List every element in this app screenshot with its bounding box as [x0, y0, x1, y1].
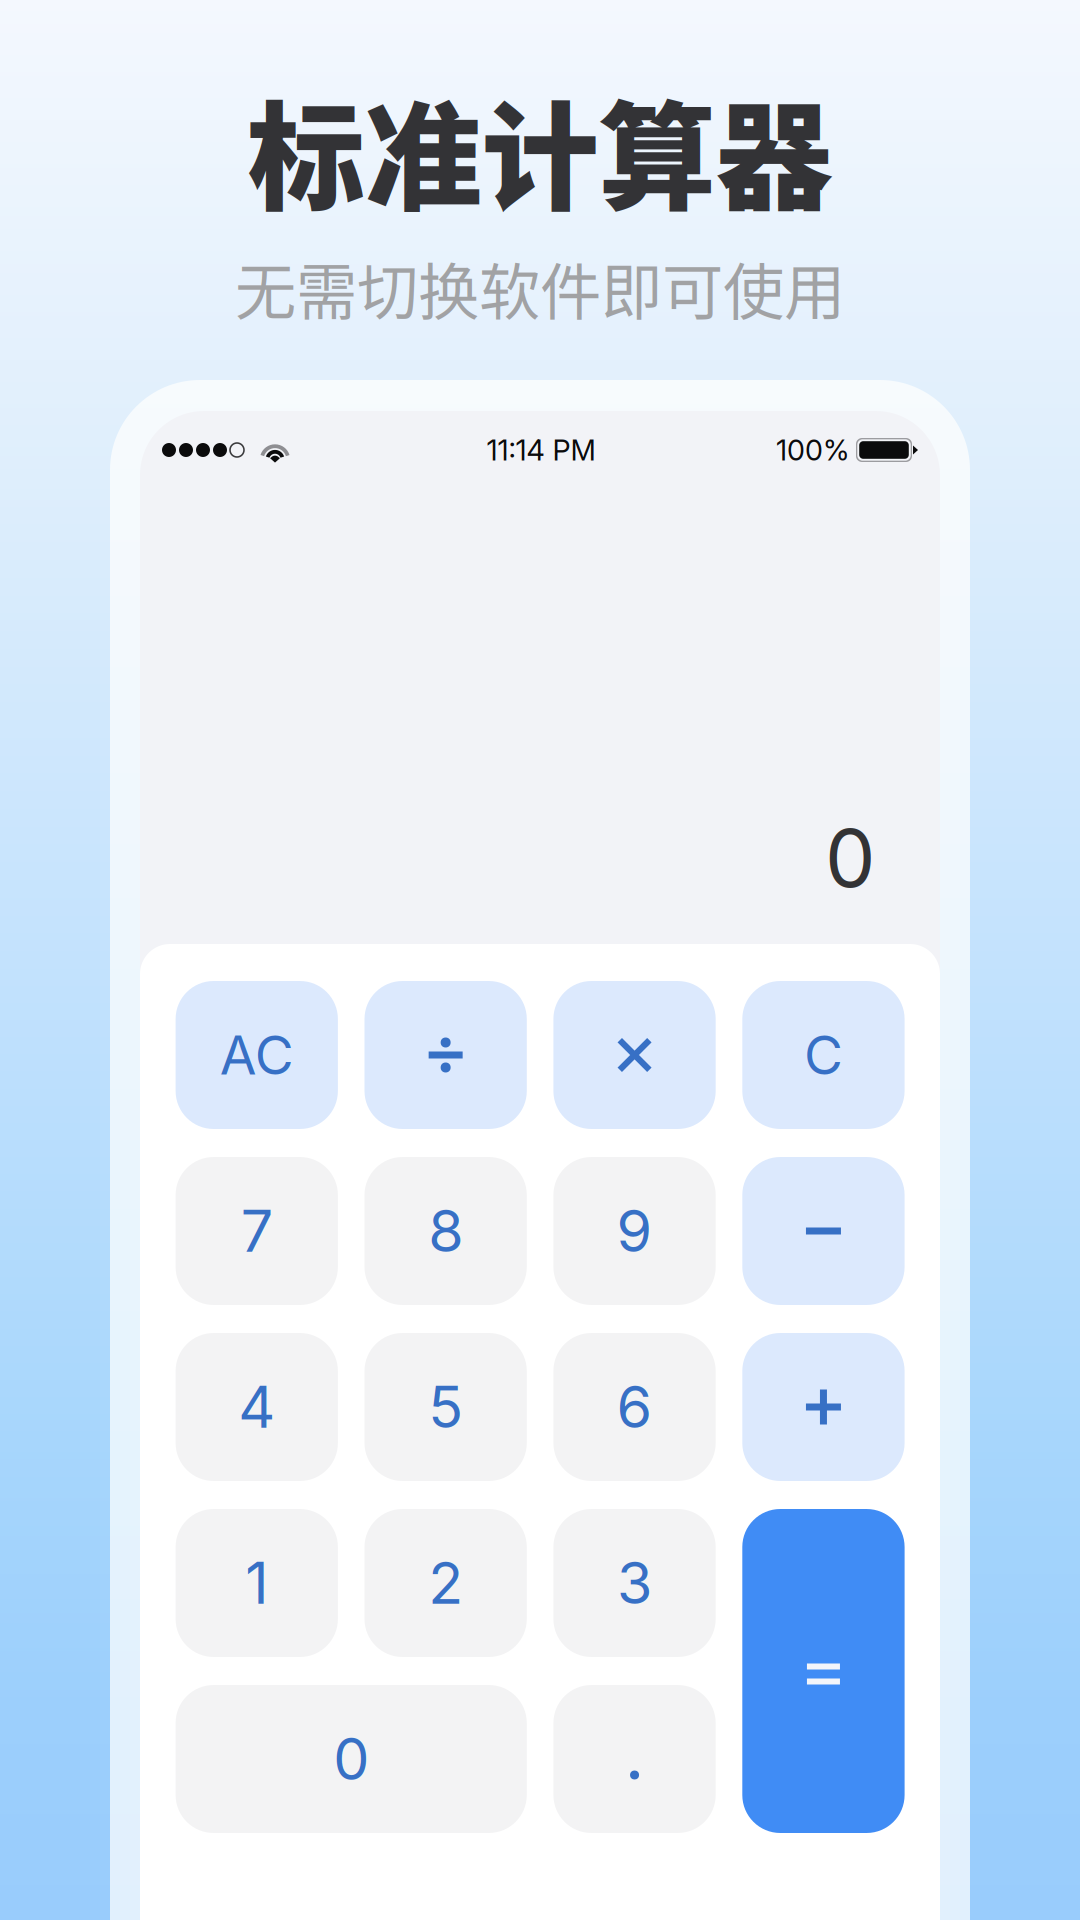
staticText: 9	[616, 1196, 652, 1266]
staticText: 5	[428, 1372, 463, 1442]
button[interactable]: Plus	[742, 1333, 905, 1481]
button[interactable]: 2	[364, 1509, 527, 1657]
staticText: 11:14 PM	[486, 433, 595, 467]
button[interactable]: Minus	[742, 1157, 905, 1305]
staticText: 4	[238, 1372, 275, 1442]
button[interactable]: Multiply	[553, 981, 716, 1129]
staticText: 100%	[776, 433, 849, 467]
staticText: 0	[825, 810, 875, 906]
button[interactable]: 1	[176, 1509, 338, 1657]
staticText: 0	[333, 1724, 369, 1794]
staticText: 8	[428, 1196, 463, 1266]
staticText: 7	[241, 1196, 273, 1266]
button[interactable]: AC	[176, 981, 338, 1129]
staticText: 无需切换软件即可使用	[235, 244, 845, 332]
button[interactable]: 6	[553, 1333, 716, 1481]
staticText: 2	[428, 1548, 463, 1618]
staticText: 标准计算器	[247, 64, 832, 234]
button[interactable]: 3	[553, 1509, 716, 1657]
staticText: 3	[617, 1548, 652, 1618]
button[interactable]: 8	[364, 1157, 527, 1305]
button[interactable]: 7	[176, 1157, 338, 1305]
staticText: AC	[220, 1023, 294, 1087]
button[interactable]: 9	[553, 1157, 716, 1305]
button[interactable]: Equals	[742, 1509, 905, 1833]
button[interactable]: 4	[176, 1333, 338, 1481]
button[interactable]: Decimal point	[553, 1685, 716, 1833]
button[interactable]: Divide	[364, 981, 527, 1129]
button[interactable]: 5	[364, 1333, 527, 1481]
button[interactable]: 0	[176, 1685, 527, 1833]
staticText: 1	[245, 1548, 268, 1618]
staticText: C	[804, 1023, 843, 1087]
staticText: 6	[616, 1372, 652, 1442]
button[interactable]: C	[742, 981, 905, 1129]
